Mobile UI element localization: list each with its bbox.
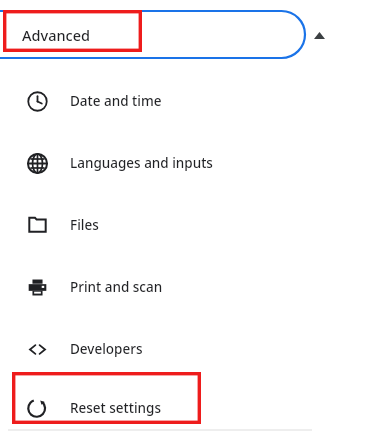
button[interactable]: Reset settings bbox=[0, 380, 374, 435]
staticText: Date and time bbox=[70, 92, 162, 110]
staticText: Developers bbox=[70, 340, 143, 358]
staticText: Files bbox=[70, 216, 99, 234]
button[interactable]: Print and scan bbox=[0, 256, 374, 318]
staticText: Languages and inputs bbox=[70, 154, 213, 172]
button[interactable]: Advanced bbox=[0, 11, 374, 58]
other: Collapse Advanced bbox=[305, 21, 333, 49]
button[interactable]: Languages and inputs bbox=[0, 132, 374, 194]
button[interactable]: Date and time bbox=[0, 70, 374, 132]
staticText: Advanced bbox=[22, 25, 90, 45]
staticText: Reset settings bbox=[70, 399, 161, 417]
button[interactable]: Developers bbox=[0, 318, 374, 380]
staticText: Print and scan bbox=[70, 278, 163, 296]
button[interactable]: Files bbox=[0, 194, 374, 256]
